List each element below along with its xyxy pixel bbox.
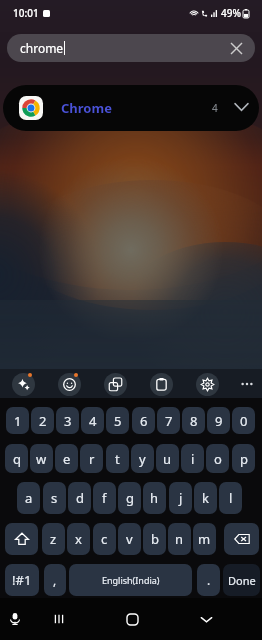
button[interactable]: !#1 bbox=[5, 564, 39, 596]
staticText: 8 bbox=[190, 412, 198, 430]
staticText: 3 bbox=[64, 412, 72, 430]
staticText: b bbox=[151, 530, 159, 548]
button[interactable]: w bbox=[30, 444, 53, 473]
button[interactable]: g bbox=[118, 482, 141, 514]
staticText: s bbox=[51, 489, 58, 507]
button[interactable]: u bbox=[156, 444, 179, 473]
button[interactable]: Done bbox=[223, 564, 260, 596]
button[interactable]: Home bbox=[122, 609, 142, 629]
button[interactable]: Shift bbox=[5, 523, 38, 555]
button[interactable]: d bbox=[68, 482, 91, 514]
button[interactable]: z bbox=[42, 523, 65, 555]
staticText: v bbox=[126, 530, 133, 548]
button[interactable]: j bbox=[169, 482, 192, 514]
button[interactable]: AI assist bbox=[12, 373, 35, 396]
button[interactable]: , bbox=[44, 564, 66, 596]
staticText: t bbox=[115, 450, 120, 468]
staticText: 9 bbox=[215, 412, 223, 430]
button[interactable]: v bbox=[118, 523, 141, 555]
button[interactable]: l bbox=[219, 482, 242, 514]
staticText: n bbox=[175, 530, 184, 548]
staticText: English(India) bbox=[102, 574, 160, 586]
button[interactable]: k bbox=[194, 482, 217, 514]
staticText: q bbox=[13, 450, 21, 468]
button[interactable]: 0 bbox=[232, 407, 255, 434]
button[interactable]: p bbox=[232, 444, 255, 473]
button[interactable]: x bbox=[67, 523, 90, 555]
staticText: a bbox=[25, 489, 33, 507]
button[interactable]: t bbox=[106, 444, 129, 473]
button[interactable]: q bbox=[5, 444, 28, 473]
button[interactable]: . bbox=[197, 564, 220, 596]
button[interactable]: i bbox=[181, 444, 204, 473]
staticText: r bbox=[89, 450, 95, 468]
staticText: x bbox=[75, 530, 82, 548]
button[interactable]: h bbox=[143, 482, 166, 514]
button[interactable]: o bbox=[206, 444, 229, 473]
button[interactable]: 6 bbox=[132, 407, 155, 434]
button[interactable]: Clipboard bbox=[150, 373, 173, 396]
button[interactable]: Clear bbox=[227, 39, 245, 57]
button[interactable]: b bbox=[143, 523, 166, 555]
button[interactable]: Voice input bbox=[6, 610, 24, 628]
button[interactable]: 3 bbox=[56, 407, 79, 434]
button[interactable]: Recents bbox=[49, 609, 69, 629]
staticText: 4 bbox=[89, 412, 97, 430]
staticText: o bbox=[214, 450, 222, 468]
staticText: 4 bbox=[212, 101, 218, 115]
button[interactable]: 9 bbox=[207, 407, 230, 434]
button[interactable]: 5 bbox=[106, 407, 129, 434]
button[interactable]: c bbox=[93, 523, 116, 555]
staticText: 6 bbox=[140, 412, 148, 430]
button[interactable]: 8 bbox=[182, 407, 205, 434]
button[interactable]: Translate bbox=[104, 373, 127, 396]
button[interactable]: 1 bbox=[6, 407, 29, 434]
button[interactable]: 7 bbox=[157, 407, 180, 434]
staticText: . bbox=[207, 572, 211, 588]
staticText: i bbox=[191, 450, 195, 468]
button[interactable]: a bbox=[17, 482, 40, 514]
staticText: e bbox=[63, 450, 71, 468]
staticText: 0 bbox=[240, 412, 248, 430]
staticText: 7 bbox=[165, 412, 173, 430]
staticText: h bbox=[150, 489, 159, 507]
button[interactable]: Backspace bbox=[224, 523, 259, 555]
button[interactable]: Emoji bbox=[58, 373, 81, 396]
staticText: 49% bbox=[221, 6, 241, 20]
staticText: u bbox=[163, 450, 172, 468]
button[interactable]: chrome bbox=[7, 34, 255, 62]
staticText: 1 bbox=[14, 412, 22, 430]
button[interactable]: Back bbox=[196, 609, 216, 629]
staticText: 5 bbox=[114, 412, 122, 430]
staticText: p bbox=[240, 450, 248, 468]
staticText: , bbox=[53, 572, 57, 588]
staticText: c bbox=[101, 530, 108, 548]
button[interactable]: More options bbox=[236, 373, 258, 395]
button[interactable]: Settings bbox=[196, 373, 219, 396]
staticText: 10:01 bbox=[13, 6, 39, 20]
button[interactable]: n bbox=[168, 523, 191, 555]
button[interactable]: y bbox=[131, 444, 154, 473]
button[interactable]: f bbox=[93, 482, 116, 514]
button[interactable]: 2 bbox=[31, 407, 54, 434]
staticText: l bbox=[229, 489, 233, 507]
staticText: k bbox=[202, 489, 209, 507]
staticText: Chrome bbox=[61, 99, 112, 117]
staticText: w bbox=[36, 450, 47, 468]
staticText: f bbox=[102, 489, 107, 507]
staticText: !#1 bbox=[12, 571, 32, 589]
button[interactable]: English(India) bbox=[69, 564, 192, 596]
staticText: Done bbox=[228, 573, 256, 588]
button[interactable]: s bbox=[43, 482, 66, 514]
staticText: y bbox=[139, 450, 146, 468]
staticText: j bbox=[179, 489, 183, 507]
button[interactable]: e bbox=[55, 444, 78, 473]
button[interactable]: Chrome bbox=[3, 85, 259, 131]
staticText: z bbox=[50, 530, 57, 548]
button[interactable]: 4 bbox=[81, 407, 104, 434]
staticText: g bbox=[126, 489, 134, 507]
button[interactable]: m bbox=[193, 523, 216, 555]
staticText: chrome bbox=[20, 40, 64, 56]
staticText: 2 bbox=[39, 412, 47, 430]
button[interactable]: r bbox=[80, 444, 103, 473]
